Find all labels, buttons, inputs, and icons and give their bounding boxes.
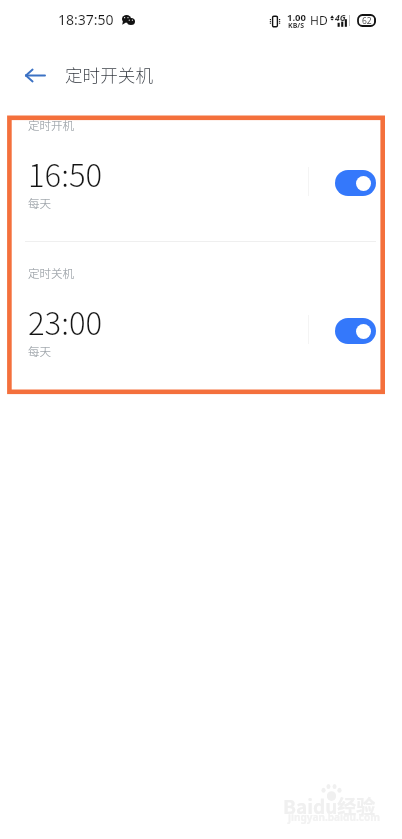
staticText: KB/S bbox=[288, 21, 305, 31]
staticText: HD bbox=[310, 12, 328, 28]
staticText: jingyan.baidu.com bbox=[288, 810, 380, 824]
staticText: 定时开机 bbox=[28, 117, 74, 134]
staticText: 定时关机 bbox=[28, 265, 74, 282]
staticText: 16:50 bbox=[28, 151, 103, 196]
button[interactable]: 返回 bbox=[10, 51, 60, 99]
button[interactable]: 定时关机 bbox=[0, 148, 402, 296]
staticText: 62 bbox=[362, 15, 372, 26]
staticText: 23:00 bbox=[28, 299, 103, 344]
staticText: 每天 bbox=[28, 195, 51, 212]
button[interactable]: 开关 bbox=[335, 170, 376, 196]
button[interactable]: 开关 bbox=[335, 318, 376, 344]
button[interactable]: 定时开机 bbox=[0, 0, 402, 148]
staticText: 定时开关机 bbox=[65, 62, 153, 87]
staticText: 每天 bbox=[28, 343, 51, 360]
staticText: 4G bbox=[335, 12, 346, 24]
staticText: Baidu经验 bbox=[283, 792, 376, 820]
staticText: 18:37:50 bbox=[58, 10, 114, 29]
staticText: 1.00 bbox=[287, 11, 306, 24]
